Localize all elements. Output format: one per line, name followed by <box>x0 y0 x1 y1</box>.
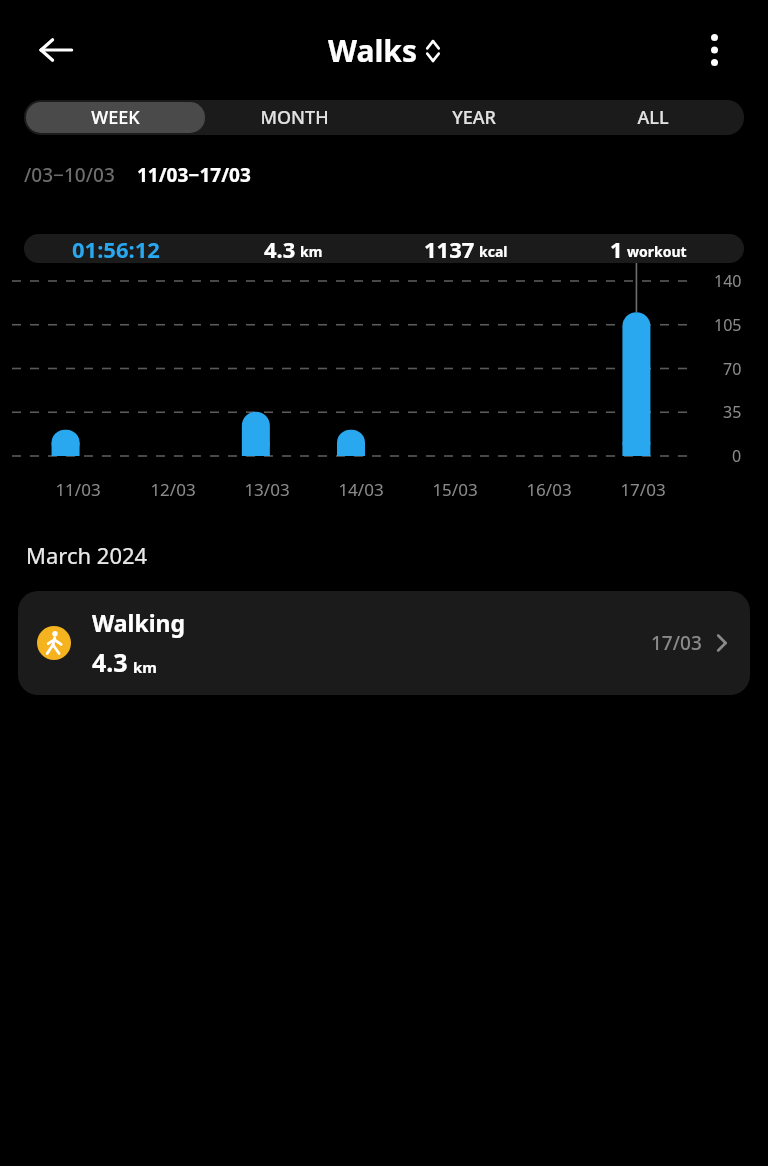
staticText: ALL <box>637 105 669 130</box>
button[interactable]: /03−10/03 <box>24 162 115 188</box>
staticText: 16/03 <box>526 478 572 501</box>
staticText: 140 <box>714 270 742 292</box>
staticText: 70 <box>723 358 742 380</box>
staticText: YEAR <box>452 105 496 130</box>
button[interactable]: More options <box>684 20 744 80</box>
button[interactable]: WEEK <box>26 102 205 133</box>
staticText: MONTH <box>260 105 329 130</box>
staticText: 11/03 <box>55 478 101 501</box>
staticText: 01:56:12 <box>72 234 160 263</box>
button[interactable]: 01:56:12 <box>24 234 744 263</box>
staticText: 4.3 <box>92 645 128 679</box>
staticText: 13/03 <box>244 478 290 501</box>
button[interactable]: Walking <box>18 591 750 695</box>
staticText: Walking <box>92 607 186 638</box>
staticText: 14/03 <box>338 478 384 501</box>
staticText: workout <box>627 242 687 261</box>
button[interactable]: YEAR <box>384 102 563 133</box>
staticText: WEEK <box>91 105 140 130</box>
staticText: km <box>133 657 157 677</box>
staticText: March 2024 <box>26 540 148 570</box>
button[interactable]: MONTH <box>205 102 384 133</box>
button[interactable]: ALL <box>563 102 742 133</box>
staticText: 17/03 <box>651 630 702 656</box>
staticText: 105 <box>714 314 742 336</box>
staticText: Walks <box>328 30 417 71</box>
staticText: 4.3 <box>264 234 296 263</box>
staticText: 15/03 <box>432 478 478 501</box>
button[interactable]: 11/03−17/03 <box>137 162 251 188</box>
staticText: km <box>300 242 323 261</box>
button[interactable]: Back <box>26 20 86 80</box>
staticText: 0 <box>732 445 742 467</box>
staticText: 1137 <box>424 234 475 263</box>
staticText: /03−10/03 <box>24 162 115 188</box>
staticText: 12/03 <box>150 478 196 501</box>
staticText: 17/03 <box>620 478 666 501</box>
staticText: kcal <box>479 242 508 261</box>
staticText: 1 <box>610 234 623 263</box>
staticText: 35 <box>723 401 742 423</box>
staticText: 11/03−17/03 <box>137 162 251 188</box>
button[interactable]: Walks <box>328 30 441 71</box>
